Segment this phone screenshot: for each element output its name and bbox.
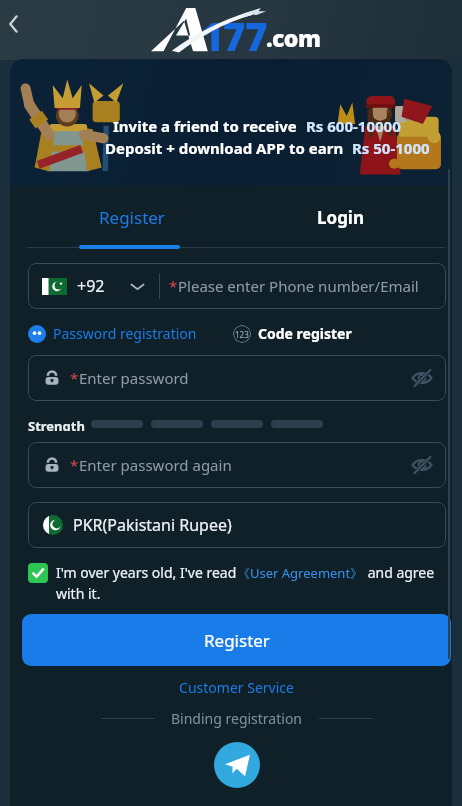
staticText: 177: [201, 9, 267, 55]
button[interactable]: *: [28, 442, 446, 488]
staticText: .com: [266, 22, 321, 53]
button[interactable]: *: [28, 355, 446, 401]
button[interactable]: Toggle password visibility: [411, 454, 433, 476]
button[interactable]: I'm over years old, I've read: [28, 563, 446, 603]
button[interactable]: Password registration: [28, 322, 197, 345]
staticText: Password registration: [53, 324, 197, 343]
button[interactable]: PKR(Pakistani Rupee): [28, 502, 446, 548]
button[interactable]: Back: [0, 8, 32, 40]
staticText: Login: [317, 206, 365, 229]
staticText: and agree: [364, 563, 435, 582]
staticText: Customer Service: [179, 678, 294, 697]
staticText: Enter password again: [79, 455, 232, 475]
staticText: Please enter Phone number/Email: [178, 276, 419, 296]
button[interactable]: +92: [28, 263, 446, 309]
staticText: +92: [77, 275, 105, 297]
staticText: Strength: [28, 417, 85, 431]
staticText: *: [70, 455, 79, 475]
staticText: Rs 600-10000: [306, 116, 401, 136]
staticText: Code register: [258, 324, 352, 343]
button[interactable]: 123: [233, 322, 352, 345]
staticText: with it.: [56, 584, 101, 603]
staticText: Invite a friend to receive: [113, 116, 297, 136]
button[interactable]: Toggle password visibility: [411, 367, 433, 389]
staticText: Register: [99, 206, 165, 229]
staticText: Enter password: [79, 368, 189, 388]
staticText: *: [169, 276, 178, 296]
button[interactable]: Customer Service: [22, 675, 451, 699]
staticText: Binding registration: [171, 709, 303, 728]
staticText: 123: [235, 329, 249, 340]
button[interactable]: Register: [22, 614, 451, 666]
button[interactable]: 《User Agreement》: [237, 564, 364, 582]
staticText: Rs 50-1000: [352, 138, 430, 158]
staticText: I'm over years old, I've read: [56, 563, 237, 582]
staticText: *: [70, 368, 79, 388]
button[interactable]: Telegram: [214, 742, 260, 788]
staticText: Deposit + download APP to earn: [105, 138, 344, 158]
button[interactable]: Register: [27, 186, 236, 248]
staticText: Register: [204, 629, 270, 652]
button[interactable]: Login: [236, 186, 445, 248]
staticText: PKR(Pakistani Rupee): [73, 514, 232, 536]
